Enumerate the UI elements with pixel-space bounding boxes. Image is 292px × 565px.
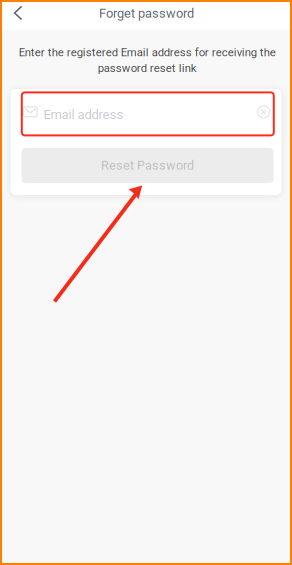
staticText: Email address: [43, 107, 123, 122]
button[interactable]: Email address: [22, 92, 274, 135]
button[interactable]: Reset Password: [21, 148, 273, 183]
button[interactable]: Back: [4, 0, 32, 27]
staticText: Enter the registered Email address for r…: [18, 46, 275, 75]
staticText: Reset Password: [101, 158, 194, 173]
staticText: Forget password: [99, 6, 194, 21]
